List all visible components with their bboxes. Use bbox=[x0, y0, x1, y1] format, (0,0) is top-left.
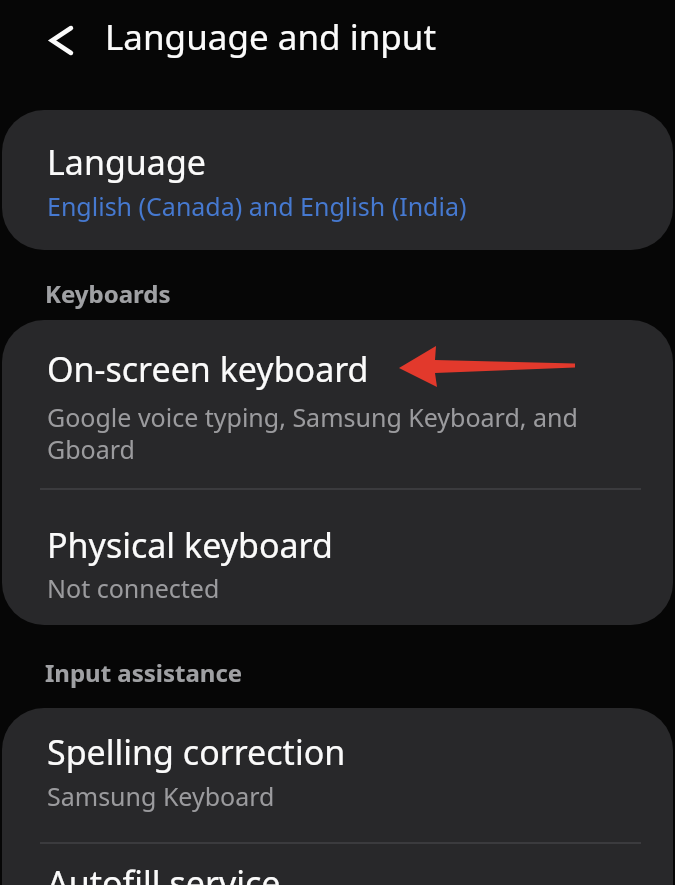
button[interactable]: Physical keyboard bbox=[2, 491, 673, 625]
staticText: Language and input bbox=[105, 13, 437, 61]
staticText: Spelling correction bbox=[47, 729, 346, 775]
staticText: Input assistance bbox=[45, 656, 243, 689]
staticText: English (Canada) and English (India) bbox=[47, 189, 467, 223]
button[interactable]: Language bbox=[2, 110, 673, 250]
staticText: Language bbox=[47, 139, 206, 185]
staticText: Samsung Keyboard bbox=[47, 779, 275, 813]
staticText: On-screen keyboard bbox=[47, 346, 369, 392]
button[interactable]: Autofill service bbox=[2, 844, 673, 885]
button[interactable] bbox=[38, 18, 82, 62]
staticText: Not connected bbox=[47, 571, 220, 605]
button[interactable]: Spelling correction bbox=[2, 708, 673, 842]
staticText: Gboard bbox=[47, 432, 135, 466]
staticText: Autofill service bbox=[47, 860, 281, 885]
staticText: Google voice typing, Samsung Keyboard, a… bbox=[47, 400, 578, 434]
staticText: Keyboards bbox=[45, 277, 171, 310]
button[interactable]: On-screen keyboard bbox=[2, 320, 673, 489]
staticText: Physical keyboard bbox=[47, 522, 333, 568]
